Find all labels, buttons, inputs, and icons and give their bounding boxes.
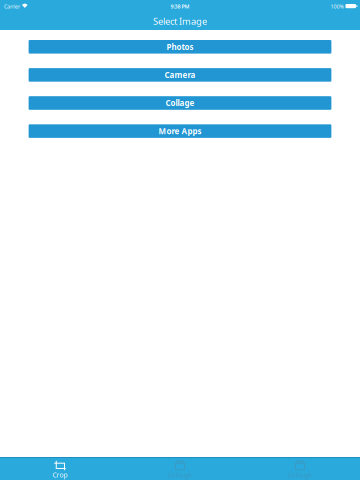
staticText: Camera (164, 70, 195, 80)
staticText: Collage (165, 98, 194, 108)
button[interactable]: Collage (120, 457, 240, 480)
staticText: Collage (288, 471, 312, 479)
staticText: Collage (168, 471, 192, 479)
staticText: More Apps (158, 126, 201, 136)
staticText: Carrier (4, 3, 20, 10)
staticText: 9:38 PM (170, 3, 189, 10)
staticText: 100% (330, 3, 343, 10)
button[interactable]: Crop (0, 457, 120, 480)
button[interactable]: Collage (240, 457, 360, 480)
staticText: Crop (52, 471, 67, 479)
button[interactable]: Collage (29, 96, 331, 110)
staticText: Select Image (153, 15, 207, 27)
button[interactable]: Camera (29, 68, 331, 82)
staticText: Photos (166, 41, 193, 52)
button[interactable]: Photos (29, 40, 331, 54)
button[interactable]: More Apps (29, 124, 331, 138)
